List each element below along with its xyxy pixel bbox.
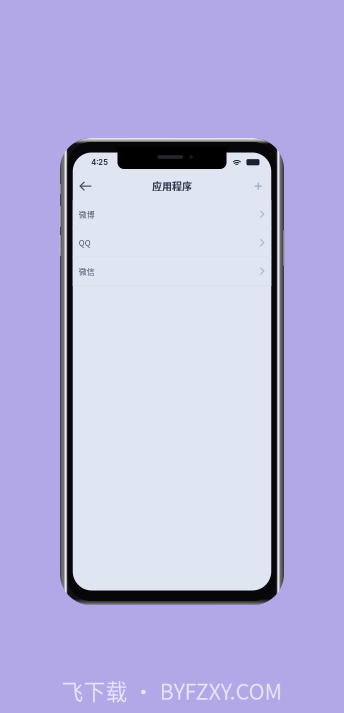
button[interactable]: Back <box>74 175 98 197</box>
staticText: 飞下载 · BYFZXY.COM <box>61 675 282 706</box>
staticText: QQ <box>79 237 91 248</box>
button[interactable]: Add <box>246 175 270 197</box>
button[interactable]: 微信 <box>73 257 271 286</box>
button[interactable]: 微博 <box>73 200 271 229</box>
staticText: 应用程序 <box>152 179 192 193</box>
button[interactable]: QQ <box>73 229 271 257</box>
staticText: 4:25 <box>91 158 108 167</box>
staticText: 微信 <box>79 265 95 277</box>
staticText: 微博 <box>79 208 95 220</box>
